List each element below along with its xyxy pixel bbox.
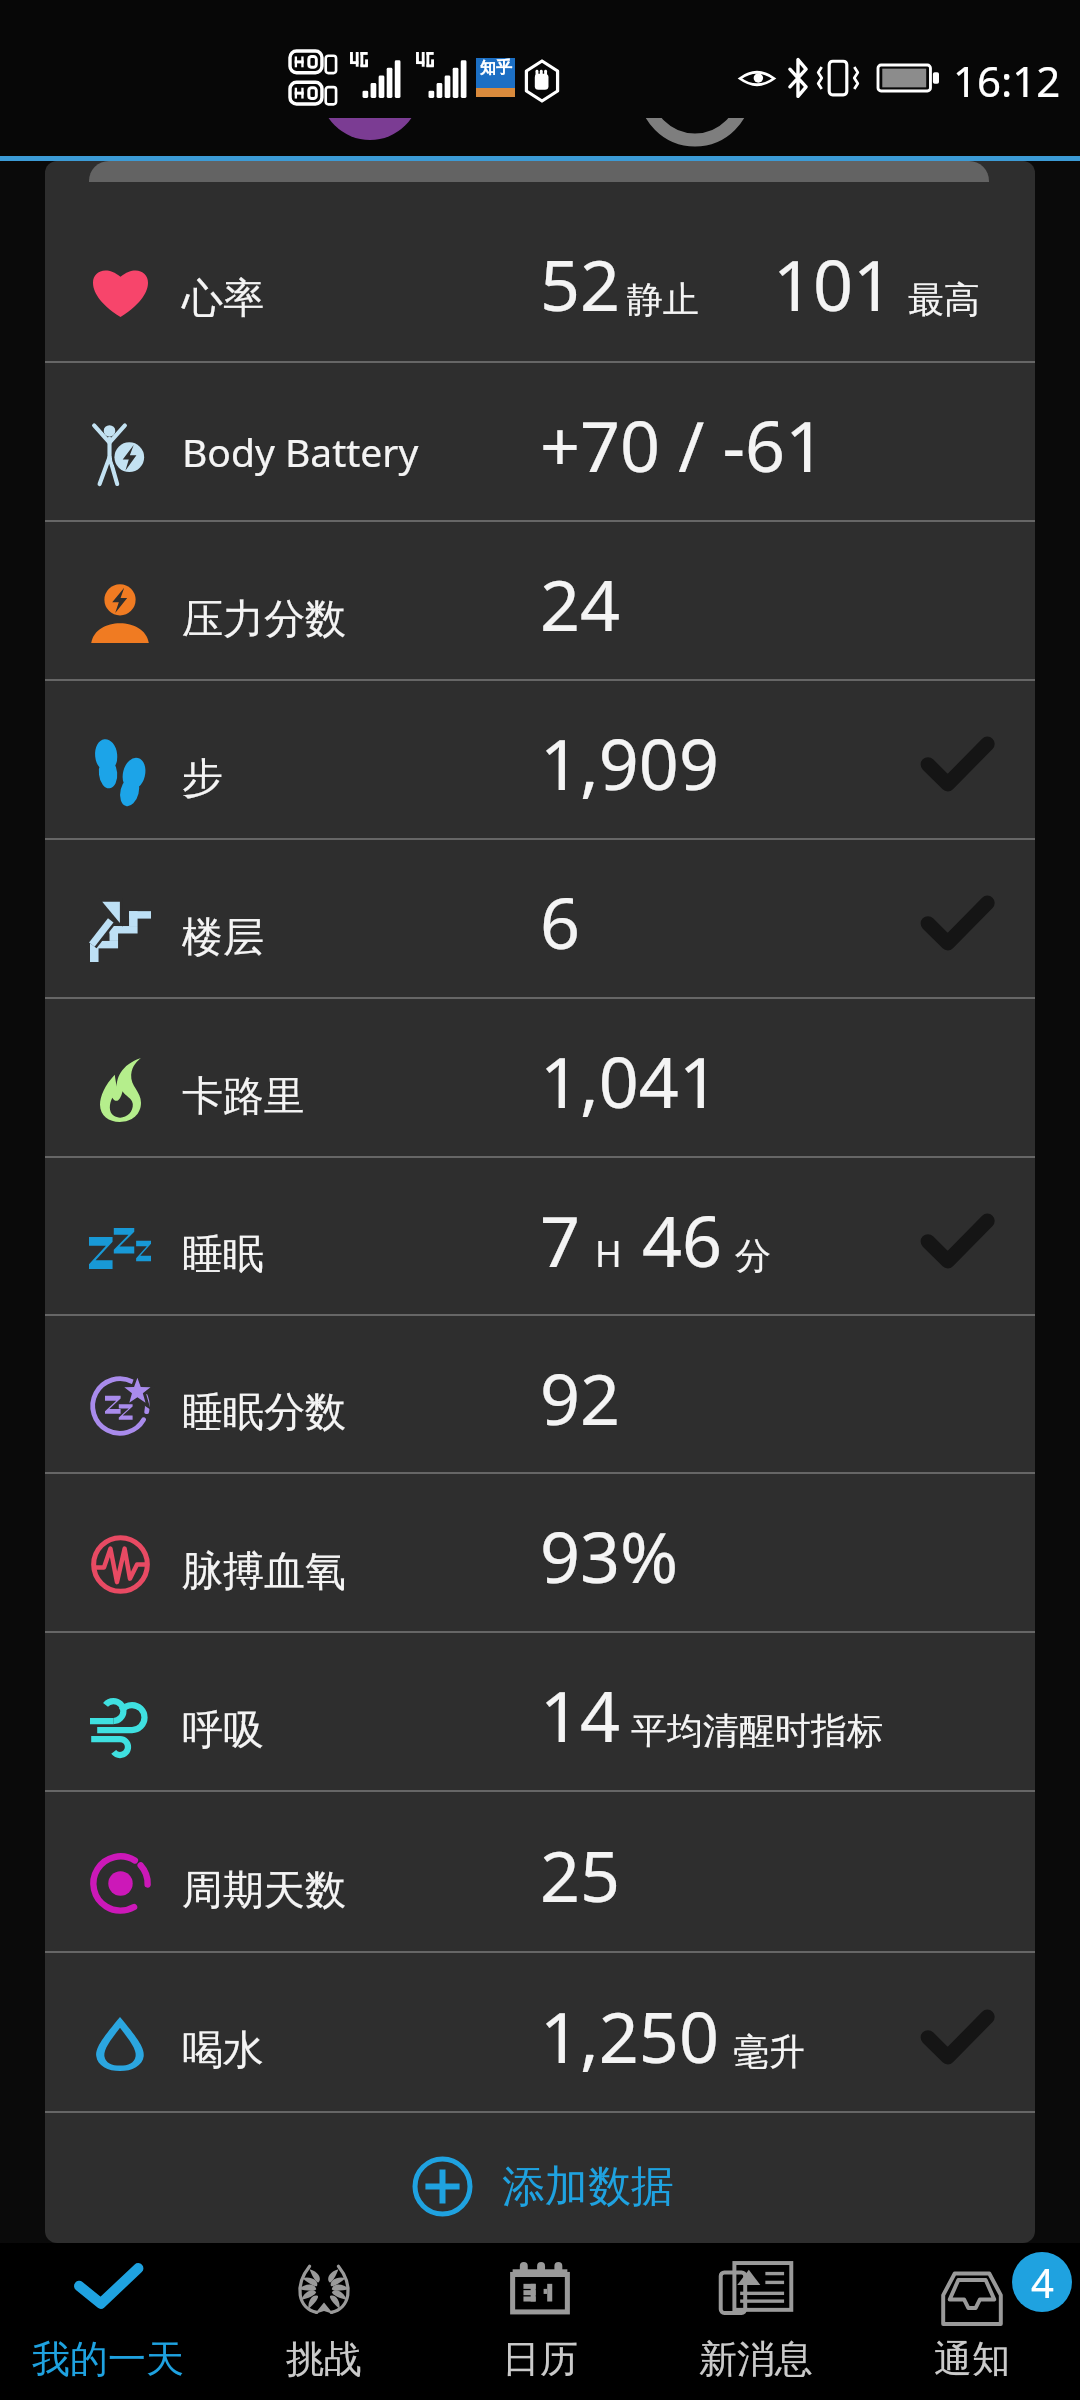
staticText: 平均清醒时指标 — [631, 1708, 883, 1753]
staticText: 周期天数 — [182, 1865, 346, 1917]
staticText: 楼层 — [182, 912, 264, 964]
staticText: 24 — [540, 556, 621, 651]
button[interactable]: 周期天数 — [45, 1792, 1035, 1951]
staticText: H — [595, 1229, 622, 1278]
button[interactable]: My Day — [0, 2243, 216, 2400]
staticText: 喝水 — [182, 2025, 264, 2077]
staticText: 14 — [540, 1667, 621, 1762]
staticText: 93% — [540, 1508, 679, 1603]
staticText: 我的一天 — [32, 2335, 184, 2383]
staticText: 毫升 — [733, 2029, 805, 2074]
staticText: 脉搏血氧 — [182, 1546, 346, 1598]
button[interactable]: 新消息 — [648, 2243, 864, 2400]
staticText: 睡眠 — [182, 1229, 264, 1281]
staticText: 呼吸 — [182, 1705, 264, 1757]
staticText: +70 / -61 — [540, 397, 826, 492]
staticText: 1,250 — [540, 1988, 719, 2083]
button[interactable]: 日历 — [432, 2243, 648, 2400]
staticText: 新消息 — [699, 2335, 813, 2383]
staticText: 日历 — [502, 2335, 578, 2383]
button[interactable]: 卡路里 — [45, 999, 1035, 1156]
staticText: 知乎 — [480, 58, 512, 78]
staticText: 步 — [182, 753, 223, 805]
staticText: 通知 — [934, 2335, 1010, 2383]
button[interactable]: 心率 — [45, 161, 1035, 361]
other: My Day — [72, 2262, 144, 2314]
staticText: 101 — [773, 236, 894, 331]
staticText: 分 — [735, 1233, 771, 1278]
button[interactable]: 添加数据 — [45, 2113, 1035, 2243]
button[interactable]: 睡眠 — [45, 1158, 1035, 1314]
staticText: 添加数据 — [502, 2160, 674, 2214]
button[interactable]: 脉搏血氧 — [45, 1474, 1035, 1631]
staticText: Body Battery — [182, 425, 419, 478]
staticText: 最高 — [908, 277, 980, 322]
staticText: 46 — [642, 1192, 723, 1287]
staticText: 92 — [540, 1350, 621, 1445]
staticText: 6 — [540, 874, 581, 969]
button[interactable]: 呼吸 — [45, 1633, 1035, 1790]
staticText: 25 — [540, 1827, 621, 1922]
staticText: 7 — [540, 1192, 581, 1287]
button[interactable]: 喝水 — [45, 1953, 1035, 2111]
staticText: 4 — [1031, 2255, 1054, 2309]
button[interactable]: Body Battery — [45, 363, 1035, 520]
staticText: 睡眠分数 — [182, 1387, 346, 1439]
staticText: 1,041 — [540, 1033, 719, 1128]
button[interactable]: 通知 — [864, 2243, 1080, 2400]
staticText: 52 — [540, 236, 621, 331]
staticText: 挑战 — [286, 2335, 362, 2383]
staticText: 卡路里 — [182, 1071, 305, 1123]
staticText: 16:12 — [953, 52, 1061, 109]
staticText: 心率 — [182, 273, 264, 325]
staticText: 压力分数 — [182, 594, 346, 646]
button[interactable]: 压力分数 — [45, 522, 1035, 679]
button[interactable]: 挑战 — [216, 2243, 432, 2400]
staticText: 静止 — [627, 277, 699, 322]
button[interactable]: 步 — [45, 681, 1035, 838]
button[interactable]: 睡眠分数 — [45, 1316, 1035, 1472]
staticText: 1,909 — [540, 715, 719, 810]
button[interactable]: 楼层 — [45, 840, 1035, 997]
